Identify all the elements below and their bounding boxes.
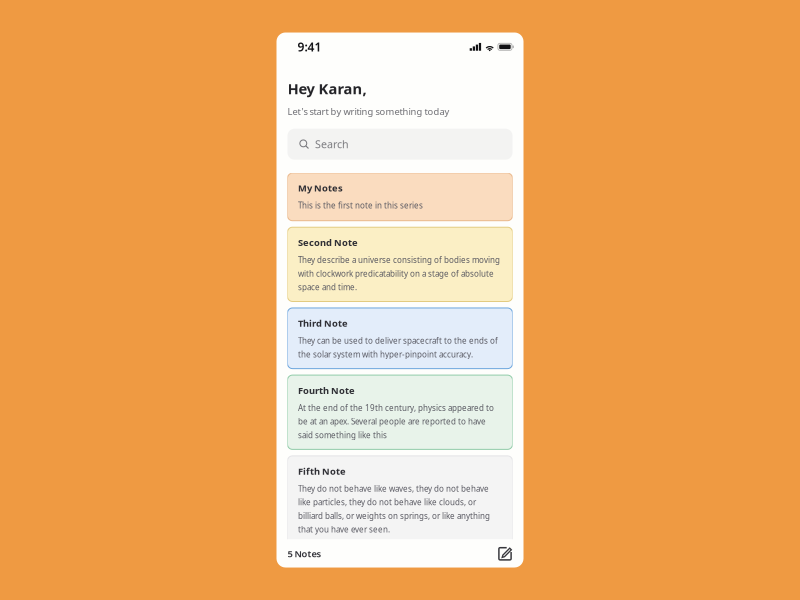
staticText: 9:41 xyxy=(297,39,321,55)
staticText: They can be used to deliver spacecraft t… xyxy=(298,335,498,360)
staticText: Hey Karan, xyxy=(287,79,366,98)
button[interactable]: Fourth Note xyxy=(287,375,512,449)
staticText: They describe a universe consisting of b… xyxy=(298,255,500,292)
staticText: Third Note xyxy=(298,317,348,329)
staticText: Let's start by writing something today xyxy=(287,105,449,118)
button[interactable]: My Notes xyxy=(287,173,512,221)
staticText: Second Note xyxy=(298,236,358,249)
staticText: Search xyxy=(315,137,349,151)
staticText: 5 Notes xyxy=(287,547,321,560)
button[interactable]: Fifth Note xyxy=(287,456,512,544)
staticText: Fifth Note xyxy=(298,465,346,477)
button[interactable]: Second Note xyxy=(287,227,512,301)
staticText: My Notes xyxy=(298,182,343,194)
staticText: At the end of the 19th century, physics … xyxy=(298,402,494,440)
staticText: Fourth Note xyxy=(298,384,355,396)
staticText: This is the first note in this series xyxy=(298,200,423,211)
staticText: They do not behave like waves, they do n… xyxy=(298,483,490,535)
button[interactable]: Compose xyxy=(496,545,513,562)
button[interactable]: Third Note xyxy=(287,308,512,369)
